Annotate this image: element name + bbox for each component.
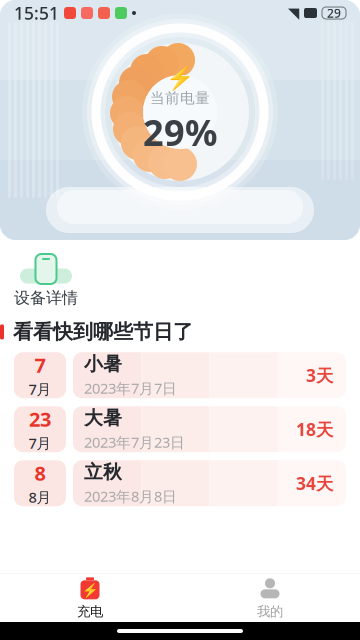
button[interactable]: 设备详情 (0, 250, 84, 310)
staticText: 充电 (77, 603, 103, 620)
button[interactable]: 8 (0, 460, 360, 506)
staticText: 看看快到哪些节日了 (13, 320, 193, 344)
staticText: 7 (34, 352, 45, 378)
staticText: 18天 (296, 418, 333, 441)
button[interactable]: 我的 (180, 571, 360, 625)
staticText: 15:51 (14, 1, 59, 24)
staticText: 8月 (28, 487, 51, 507)
staticText: 立秋 (84, 460, 122, 483)
staticText: ◥ (288, 5, 299, 21)
staticText: 29% (143, 108, 217, 156)
staticText: 23 (29, 406, 51, 432)
staticText: 当前电量 (150, 89, 210, 107)
staticText: ⚡ (81, 583, 98, 598)
staticText: 8 (34, 460, 45, 486)
staticText: 29 (327, 5, 341, 21)
staticText: 7月 (28, 433, 51, 453)
staticText: 我的 (257, 603, 283, 620)
button[interactable]: 23 (0, 406, 360, 452)
staticText: ⚡ (166, 65, 194, 91)
button[interactable]: ⚡ (0, 571, 180, 625)
staticText: 小暑 (84, 352, 122, 375)
staticText: 设备详情 (14, 288, 78, 308)
staticText: 34天 (296, 472, 333, 495)
staticText: 2023年8月8日 (84, 486, 177, 506)
button[interactable]: 7 (0, 352, 360, 398)
staticText: 7月 (28, 379, 51, 399)
staticText: 2023年7月23日 (84, 432, 185, 452)
staticText: 3天 (306, 364, 333, 387)
staticText: 2023年7月7日 (84, 378, 177, 398)
staticText: 大暑 (84, 406, 122, 429)
